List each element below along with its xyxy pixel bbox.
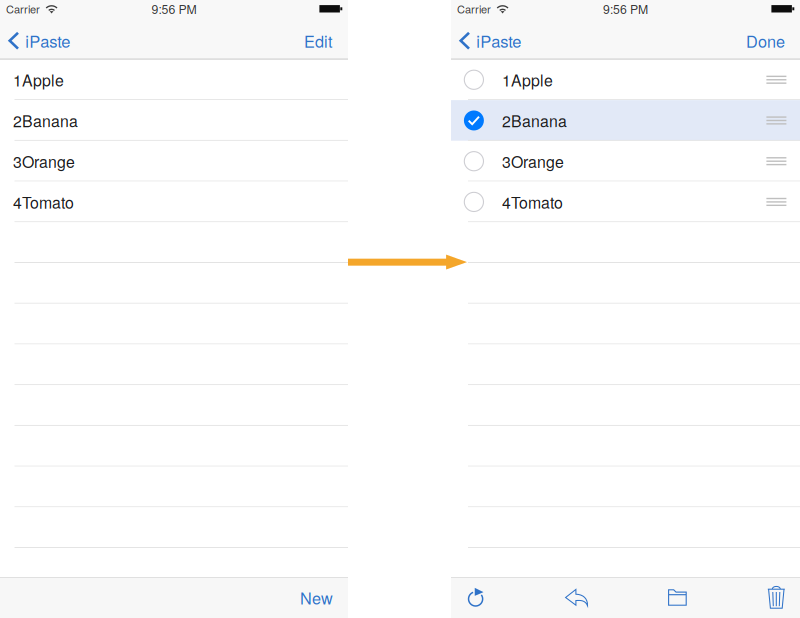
button[interactable]: 3Orange bbox=[0, 141, 348, 181]
staticText: New bbox=[300, 586, 333, 609]
staticText: iPaste bbox=[25, 29, 70, 53]
button[interactable]: 1Apple bbox=[451, 59, 800, 100]
staticText: Carrier bbox=[6, 1, 40, 17]
button[interactable]: 4Tomato bbox=[0, 182, 348, 222]
button[interactable]: Undo bbox=[554, 577, 600, 618]
button[interactable]: 4Tomato bbox=[451, 182, 800, 222]
staticText: 4Tomato bbox=[13, 191, 74, 213]
button[interactable]: 2Banana bbox=[0, 100, 348, 141]
staticText: 9:56 PM bbox=[603, 0, 648, 18]
button[interactable]: Delete bbox=[754, 577, 798, 618]
staticText: 1Apple bbox=[502, 68, 553, 91]
button[interactable]: 2Banana bbox=[451, 100, 800, 141]
staticText: 9:56 PM bbox=[151, 0, 196, 18]
button[interactable]: New bbox=[285, 577, 348, 618]
staticText: Edit bbox=[304, 29, 333, 52]
staticText: 3Orange bbox=[502, 150, 564, 172]
staticText: 4Tomato bbox=[502, 191, 563, 213]
staticText: 2Banana bbox=[13, 109, 78, 132]
staticText: Carrier bbox=[457, 1, 491, 17]
button[interactable]: Move to folder bbox=[655, 577, 699, 618]
button[interactable]: 1Apple bbox=[0, 59, 348, 100]
button[interactable]: Done bbox=[731, 22, 800, 59]
button[interactable]: Edit bbox=[289, 22, 348, 59]
button[interactable]: 3Orange bbox=[451, 141, 800, 181]
button[interactable]: iPaste bbox=[0, 22, 80, 59]
button[interactable]: Redo bbox=[454, 577, 498, 618]
button[interactable]: iPaste bbox=[451, 22, 531, 59]
staticText: 3Orange bbox=[13, 150, 75, 172]
staticText: 1Apple bbox=[13, 68, 64, 91]
staticText: Done bbox=[746, 29, 785, 52]
staticText: 2Banana bbox=[502, 109, 567, 132]
staticText: iPaste bbox=[476, 29, 521, 53]
